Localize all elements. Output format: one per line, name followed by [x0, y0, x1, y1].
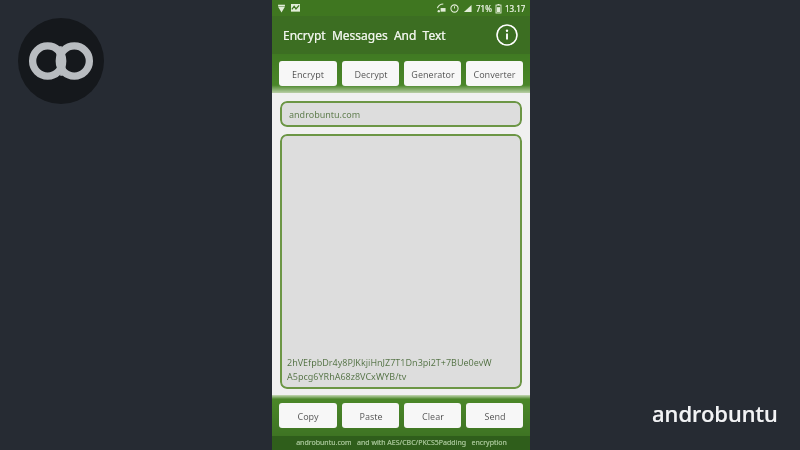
button[interactable]: androbuntu.com — [280, 101, 522, 127]
staticText: Encrypt Messages And Text — [283, 27, 446, 43]
button[interactable]: Copy — [279, 403, 337, 428]
staticText: Send — [484, 410, 506, 422]
staticText: androbuntu.com and with AES/CBC/PKCS5Pad… — [296, 438, 507, 448]
staticText: Decrypt — [354, 68, 388, 80]
staticText: 13.17 — [505, 3, 526, 14]
button[interactable]: Info — [496, 24, 518, 46]
staticText: Clear — [422, 410, 444, 422]
button[interactable]: Encrypt — [279, 61, 337, 86]
button[interactable]: Paste — [342, 403, 399, 428]
staticText: 71% — [476, 3, 492, 14]
staticText: androbuntu — [652, 398, 778, 428]
staticText: 2hVEfpbDr4y8PJKkjiHnJZ7T1Dn3pi2T+7BUe0ev… — [287, 356, 492, 368]
button[interactable]: Clear — [404, 403, 461, 428]
staticText: Paste — [359, 410, 383, 422]
button[interactable]: 2hVEfpbDr4y8PJKkjiHnJZ7T1Dn3pi2T+7BUe0ev… — [280, 134, 522, 389]
button[interactable]: Send — [466, 403, 523, 428]
staticText: Generator — [411, 68, 455, 80]
staticText: androbuntu.com — [289, 108, 361, 120]
button[interactable]: Generator — [404, 61, 461, 86]
staticText: Copy — [297, 410, 319, 422]
staticText: Encrypt — [292, 68, 324, 80]
staticText: A5pcg6YRhA68z8VCxWYB/tv — [287, 370, 407, 382]
staticText: Converter — [473, 68, 516, 80]
button[interactable]: Converter — [466, 61, 523, 86]
button[interactable]: Decrypt — [342, 61, 399, 86]
